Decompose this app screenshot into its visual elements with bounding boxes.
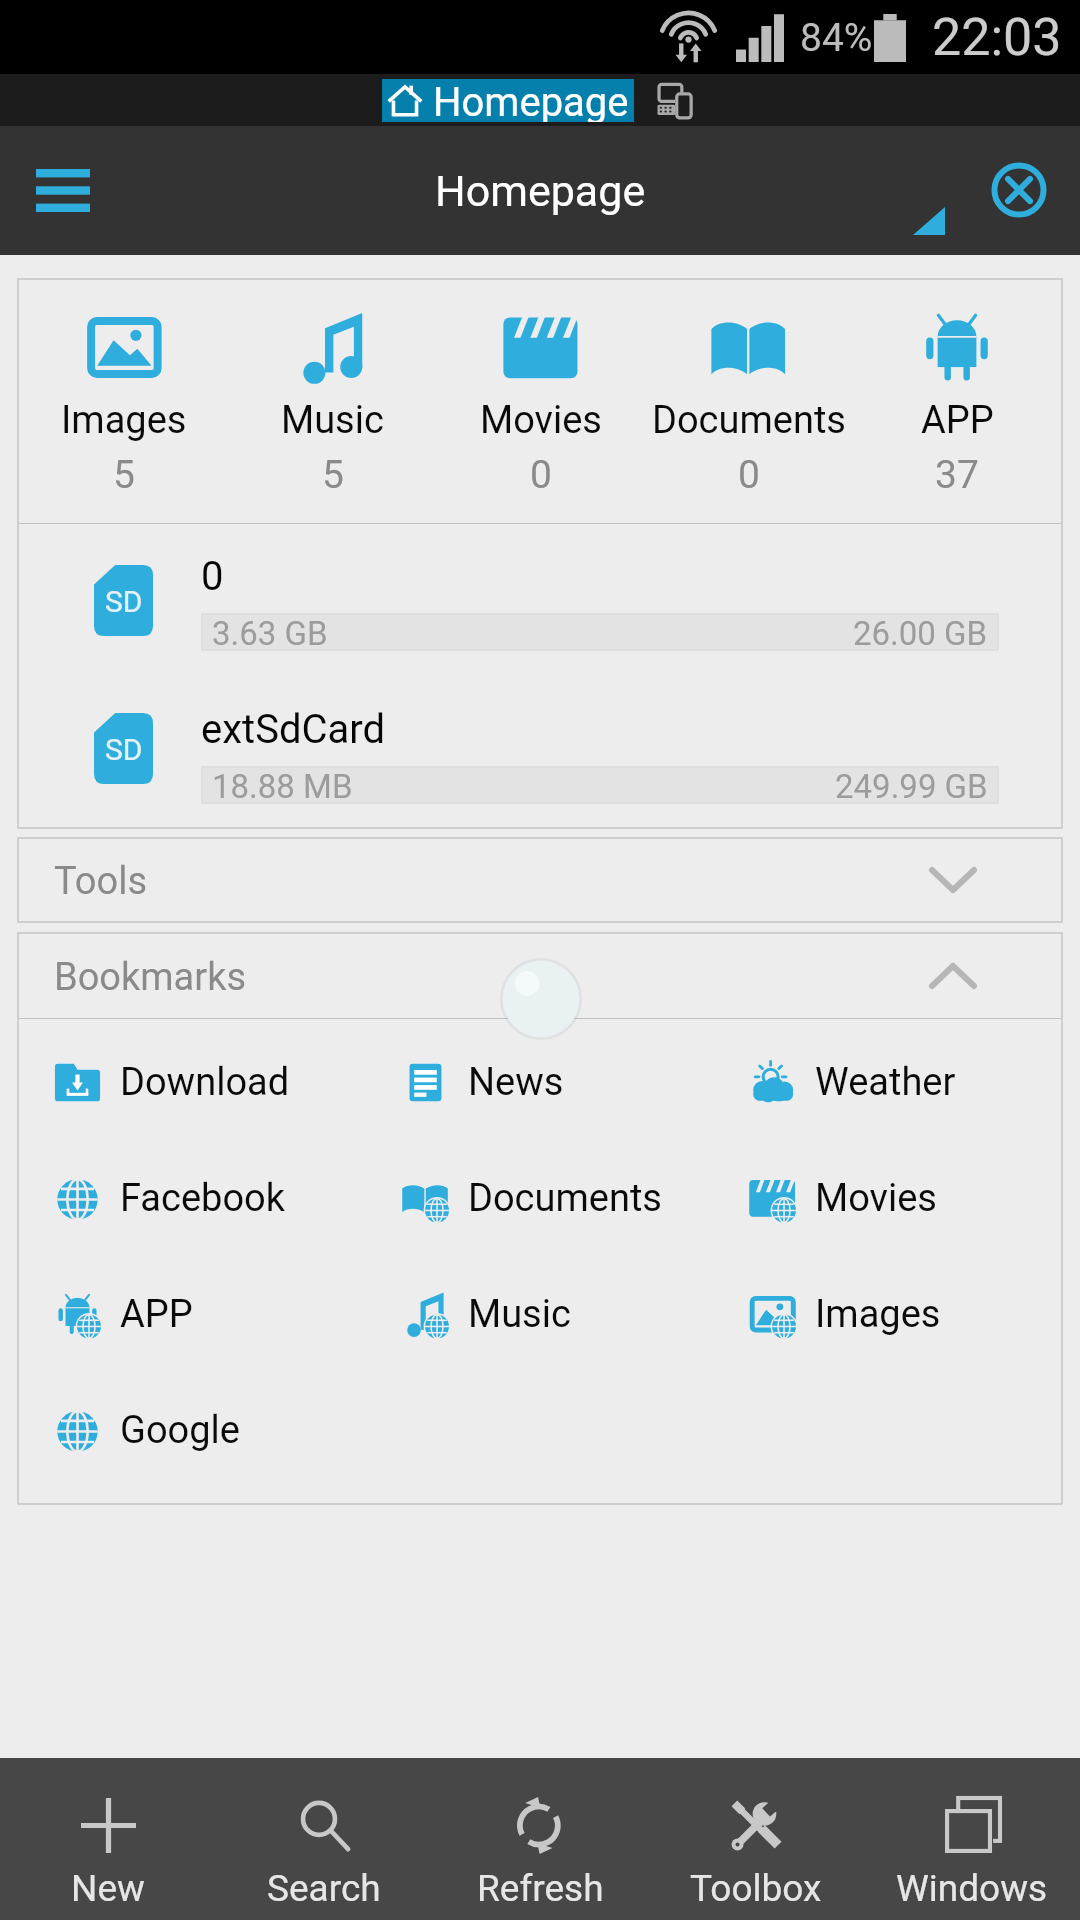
staticText: 5 (113, 452, 135, 498)
staticText: 22:03 (932, 7, 1062, 68)
staticText: 0 (530, 452, 552, 498)
button[interactable]: Refresh (432, 1758, 648, 1920)
staticText: 0 (738, 452, 760, 498)
staticText: SD (105, 584, 143, 619)
button[interactable]: Documents (645, 280, 853, 523)
button[interactable]: Menu (12, 141, 112, 241)
staticText: extSdCard (201, 706, 385, 753)
button[interactable]: Google (19, 1372, 367, 1488)
staticText: Music (281, 398, 384, 443)
staticText: Refresh (477, 1867, 604, 1910)
staticText: Search (267, 1867, 381, 1910)
staticText: APP (921, 398, 994, 443)
staticText: SD (105, 732, 143, 767)
staticText: Download (120, 1060, 290, 1105)
staticText: Homepage (435, 166, 646, 216)
button[interactable]: Close (981, 152, 1057, 228)
button[interactable]: Movies (437, 280, 645, 523)
button[interactable]: Toolbox (648, 1758, 864, 1920)
staticText: Movies (815, 1176, 937, 1221)
staticText: Music (468, 1292, 571, 1337)
staticText: Facebook (120, 1176, 286, 1221)
button[interactable]: News (367, 1024, 714, 1140)
button[interactable]: APP (19, 1256, 367, 1372)
staticText: Google (120, 1408, 240, 1453)
button[interactable]: SD (19, 676, 1061, 827)
button[interactable]: Documents (367, 1140, 714, 1256)
button[interactable]: Search (216, 1758, 432, 1920)
button[interactable]: Multi window (656, 82, 694, 120)
staticText: 3.63 GB (212, 614, 328, 650)
staticText: Images (61, 398, 187, 443)
staticText: 26.00 GB (853, 614, 988, 650)
staticText: Movies (480, 398, 602, 443)
button[interactable]: Music (367, 1256, 714, 1372)
button[interactable]: Facebook (19, 1140, 367, 1256)
button[interactable]: SD (19, 524, 1061, 676)
button[interactable]: Bookmarks (19, 934, 1061, 1018)
button[interactable]: Windows (864, 1758, 1080, 1920)
staticText: Windows (896, 1867, 1048, 1910)
button[interactable]: APP (853, 280, 1061, 523)
staticText: 37 (935, 452, 979, 498)
staticText: Documents (468, 1176, 662, 1221)
button[interactable]: Movies (714, 1140, 1061, 1256)
staticText: Documents (652, 398, 846, 443)
button[interactable]: Tools (19, 839, 1061, 921)
staticText: Homepage (433, 79, 629, 122)
staticText: News (468, 1060, 564, 1105)
staticText: 5 (322, 452, 344, 498)
staticText: Weather (815, 1060, 956, 1105)
staticText: 249.99 GB (835, 767, 988, 803)
button[interactable]: Download (19, 1024, 367, 1140)
staticText: 84% (800, 15, 873, 61)
staticText: Bookmarks (54, 955, 247, 1000)
staticText: Tools (54, 859, 148, 904)
staticText: New (71, 1867, 145, 1910)
staticText: Images (815, 1292, 941, 1337)
staticText: 18.88 MB (212, 767, 353, 803)
button[interactable]: Music (228, 280, 437, 523)
button[interactable]: Images (714, 1256, 1061, 1372)
staticText: Toolbox (690, 1867, 822, 1910)
staticText: 0 (201, 553, 224, 600)
staticText: APP (120, 1292, 193, 1337)
button[interactable]: Images (19, 280, 228, 523)
button[interactable]: New (0, 1758, 216, 1920)
button[interactable]: Homepage (382, 79, 634, 122)
button[interactable]: Weather (714, 1024, 1061, 1140)
